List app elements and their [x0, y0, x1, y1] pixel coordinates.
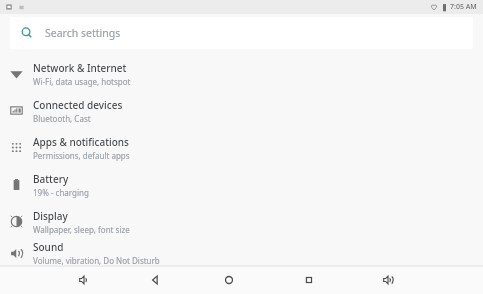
button[interactable]: Sound	[0, 240, 483, 266]
staticText: Connected devices	[33, 98, 123, 112]
button[interactable]: Search settings	[10, 17, 473, 49]
button[interactable]: Connected devices	[0, 92, 483, 129]
staticText: Network & Internet	[33, 61, 127, 75]
staticText: Wallpaper, sleep, font size	[33, 224, 130, 235]
staticText: 19% - charging	[33, 187, 89, 198]
button[interactable]: Display	[0, 203, 483, 240]
button[interactable]: Recent apps	[298, 269, 320, 291]
button[interactable]: Volume up	[377, 269, 399, 291]
staticText: Display	[33, 209, 68, 223]
button[interactable]: Battery	[0, 166, 483, 203]
staticText: Apps & notifications	[33, 135, 129, 149]
staticText: Sound	[33, 240, 64, 254]
button[interactable]: Network & Internet	[0, 55, 483, 92]
button[interactable]: Home	[218, 269, 240, 291]
staticText: Battery	[33, 172, 69, 186]
button[interactable]: Apps & notifications	[0, 129, 483, 166]
staticText: Bluetooth, Cast	[33, 113, 91, 124]
button[interactable]: Volume down	[73, 269, 95, 291]
staticText: Wi-Fi, data usage, hotspot	[33, 76, 131, 87]
staticText: 7:05 AM	[450, 2, 477, 12]
staticText: Permissions, default apps	[33, 150, 130, 161]
staticText: Search settings	[45, 26, 121, 40]
button[interactable]: Back	[144, 269, 166, 291]
staticText: Volume, vibration, Do Not Disturb	[33, 255, 160, 266]
